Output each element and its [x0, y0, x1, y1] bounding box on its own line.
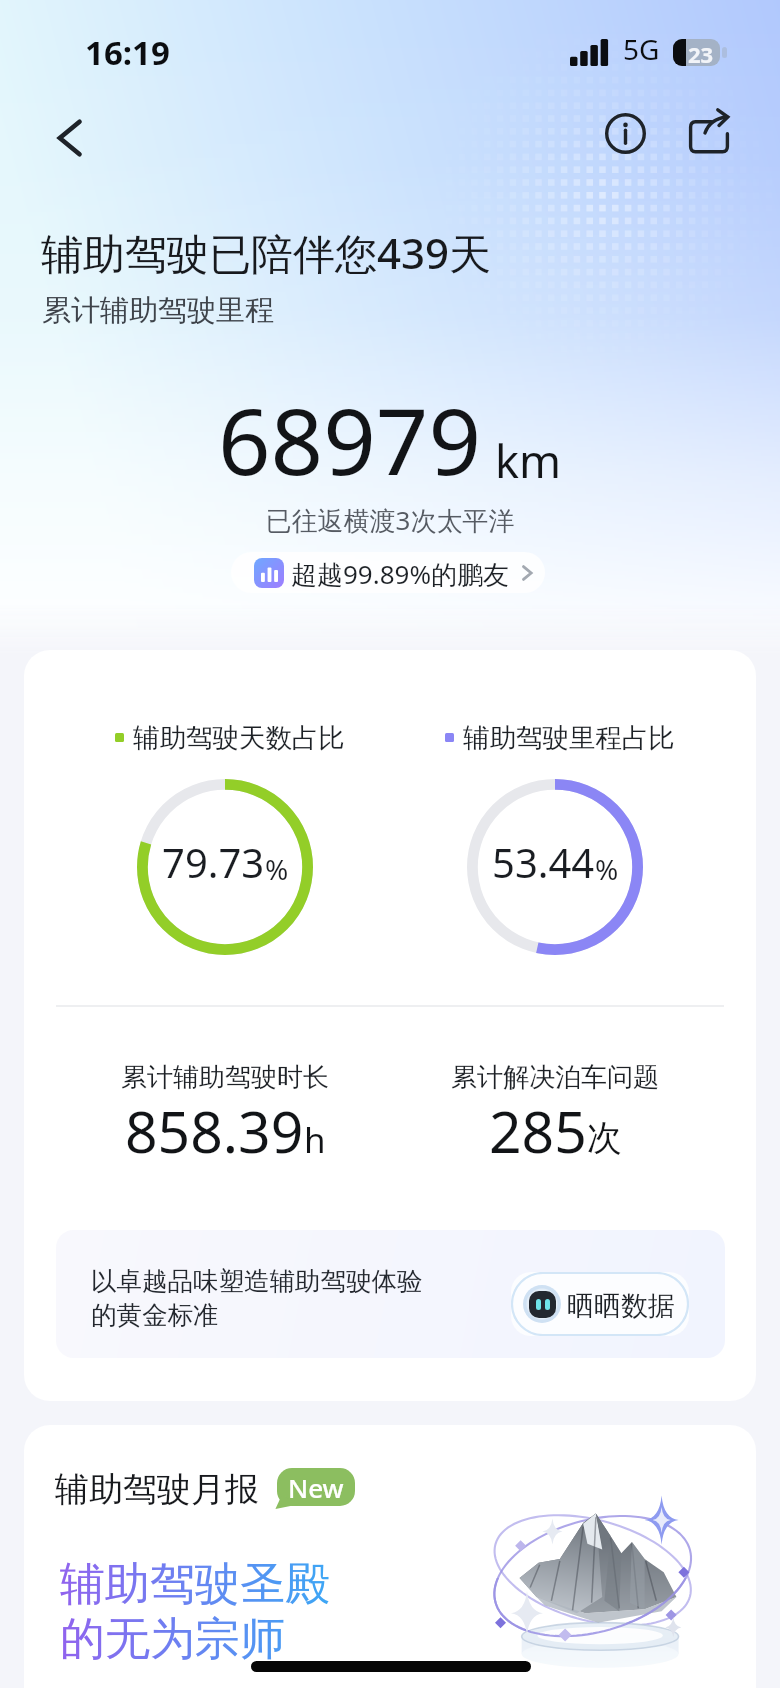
button[interactable]: 超越99.89%的鹏友 [231, 552, 545, 593]
button[interactable]: Back [38, 106, 102, 170]
staticText: 辅助驾驶月报 [55, 1468, 259, 1511]
staticText: 累计解决泊车问题 [451, 1061, 659, 1094]
button[interactable]: Share [677, 101, 741, 165]
staticText: 辅助驾驶已陪伴您439天 [41, 224, 492, 281]
staticText: 累计辅助驾驶时长 [121, 1061, 329, 1094]
staticText: 次 [587, 1116, 622, 1160]
staticText: 858.39 [125, 1092, 304, 1170]
staticText: 已往返横渡3次太平洋 [0, 502, 780, 538]
staticText: 晒晒数据 [567, 1289, 675, 1323]
staticText: 辅助驾驶里程占比 [463, 721, 675, 754]
staticText: New [288, 1470, 344, 1505]
staticText: 79.73 [162, 835, 265, 889]
button[interactable]: Info [593, 101, 657, 165]
button[interactable]: 晒晒数据 [511, 1272, 689, 1336]
staticText: km [495, 430, 562, 491]
staticText: 辅助驾驶圣殿 [60, 1556, 330, 1613]
staticText: h [304, 1116, 326, 1164]
staticText: 以卓越品味塑造辅助驾驶体验 [91, 1265, 423, 1297]
staticText: 53.44 [492, 835, 595, 889]
staticText: 285 [489, 1092, 587, 1170]
staticText: 累计辅助驾驶里程 [42, 292, 274, 329]
staticText: 超越99.89%的鹏友 [291, 556, 510, 592]
staticText: 的黄金标准 [91, 1299, 219, 1331]
staticText: 23 [688, 39, 714, 66]
staticText: 5G [623, 30, 660, 68]
staticText: 辅助驾驶天数占比 [133, 721, 345, 754]
staticText: % [595, 850, 619, 888]
staticText: % [265, 850, 289, 888]
staticText: 的无为宗师 [60, 1611, 285, 1668]
staticText: 16:19 [85, 30, 170, 75]
staticText: 68979 [218, 377, 482, 502]
